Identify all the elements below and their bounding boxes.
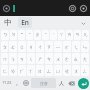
- staticText: 中: [4, 18, 12, 27]
- staticText: 注音: [40, 81, 48, 86]
- staticText: ㄢ: [75, 32, 80, 38]
- staticText: ˙: [53, 32, 54, 38]
- staticText: ㄤ: [82, 56, 88, 62]
- button[interactable]: ㄙ: [45, 65, 53, 76]
- staticText: ㄉ: [11, 32, 16, 38]
- button[interactable]: ㄡ: [72, 65, 80, 76]
- staticText: ˋ: [29, 32, 31, 38]
- button[interactable]: ㄛ: [63, 41, 71, 52]
- staticText: ㄇ: [2, 56, 8, 62]
- staticText: ㄌ: [10, 68, 16, 74]
- button[interactable]: Expand toolbar: [79, 19, 87, 27]
- button[interactable]: Backspace: [67, 77, 76, 89]
- button[interactable]: ˋ: [26, 30, 33, 40]
- staticText: ㄚ: [59, 32, 64, 38]
- button[interactable]: Settings: [68, 4, 77, 13]
- staticText: ㄠ: [73, 56, 79, 62]
- staticText: ㄨ: [55, 56, 61, 62]
- button[interactable]: ㄈ: [1, 65, 8, 76]
- button[interactable]: ㄦ: [82, 30, 89, 40]
- staticText: ˊ: [45, 32, 47, 38]
- button[interactable]: ㄏ: [18, 65, 26, 76]
- button[interactable]: ㄇ: [1, 53, 8, 64]
- staticText: ㄓ: [35, 32, 40, 38]
- staticText: ㄋ: [10, 56, 16, 62]
- button[interactable]: ㄤ: [81, 53, 89, 64]
- staticText: ㄟ: [73, 44, 79, 50]
- button[interactable]: ㄐ: [27, 41, 35, 52]
- button[interactable]: ㄌ: [9, 65, 17, 76]
- button[interactable]: ㄞ: [66, 30, 73, 40]
- button[interactable]: ㄓ: [34, 30, 41, 40]
- button[interactable]: ?123: [1, 77, 12, 89]
- button[interactable]: ，: [13, 77, 20, 89]
- staticText: ㄈ: [2, 68, 8, 74]
- button[interactable]: ㄣ: [81, 41, 89, 52]
- staticText: ㄊ: [10, 44, 16, 50]
- staticText: ㄡ: [73, 68, 79, 74]
- button[interactable]: ˙: [50, 30, 57, 40]
- button[interactable]: ㄒ: [27, 65, 35, 76]
- button[interactable]: ㄘ: [45, 53, 53, 64]
- staticText: ㄕ: [37, 56, 43, 62]
- staticText: ㄞ: [67, 32, 72, 38]
- button[interactable]: ㄍ: [18, 41, 26, 52]
- button[interactable]: ㄕ: [36, 53, 44, 64]
- staticText: ㄦ: [83, 32, 88, 38]
- staticText: ?123: [2, 80, 12, 86]
- staticText: ㄧ: [55, 44, 61, 50]
- button[interactable]: Emoji: [2, 4, 11, 13]
- staticText: ㄐ: [28, 44, 34, 50]
- staticText: ㄔ: [37, 44, 43, 50]
- button[interactable]: ㄆ: [1, 41, 8, 52]
- button[interactable]: More options: [79, 4, 88, 13]
- button[interactable]: ㄥ: [81, 65, 89, 76]
- button[interactable]: 中: [3, 17, 13, 28]
- button[interactable]: ˊ: [42, 30, 49, 40]
- staticText: ㄛ: [64, 44, 70, 50]
- staticText: ㄖ: [37, 68, 43, 74]
- button[interactable]: ㄚ: [58, 30, 65, 40]
- button[interactable]: En: [18, 17, 32, 28]
- button[interactable]: 人: [57, 77, 66, 89]
- staticText: 人: [59, 80, 64, 86]
- button[interactable]: Enter: [78, 78, 89, 89]
- button[interactable]: ㄟ: [72, 41, 80, 52]
- button[interactable]: ㄖ: [36, 65, 44, 76]
- button[interactable]: ㄎ: [18, 53, 26, 64]
- staticText: ㄑ: [28, 56, 34, 62]
- staticText: ㄣ: [82, 44, 88, 50]
- staticText: ˇ: [21, 32, 23, 38]
- staticText: ㄒ: [28, 68, 34, 74]
- button[interactable]: Space: [31, 78, 56, 88]
- button[interactable]: ㄗ: [45, 41, 53, 52]
- button[interactable]: ㄩ: [54, 65, 62, 76]
- staticText: ，: [14, 80, 20, 87]
- button[interactable]: ㄔ: [36, 41, 44, 52]
- staticText: ㄥ: [82, 68, 88, 74]
- button[interactable]: ㄅ: [1, 30, 9, 40]
- staticText: ㄍ: [19, 44, 25, 50]
- button[interactable]: ㄢ: [74, 30, 81, 40]
- staticText: ㄎ: [19, 56, 25, 62]
- button[interactable]: ㄋ: [9, 53, 17, 64]
- staticText: ㄙ: [46, 68, 52, 74]
- button[interactable]: ㄊ: [9, 41, 17, 52]
- button[interactable]: ㄨ: [54, 53, 62, 64]
- staticText: ㄝ: [64, 68, 70, 74]
- staticText: ㄆ: [2, 44, 8, 50]
- button[interactable]: ㄜ: [63, 53, 71, 64]
- button[interactable]: ㄑ: [27, 53, 35, 64]
- button[interactable]: ㄝ: [63, 65, 71, 76]
- staticText: ㄩ: [55, 68, 61, 74]
- staticText: ㄏ: [19, 68, 25, 74]
- staticText: ㄅ: [3, 32, 8, 38]
- button[interactable]: ㄠ: [72, 53, 80, 64]
- button[interactable]: ㄉ: [10, 30, 17, 40]
- staticText: ㄗ: [46, 44, 52, 50]
- staticText: ㄘ: [46, 56, 52, 62]
- button[interactable]: ㄧ: [54, 41, 62, 52]
- button[interactable]: ˇ: [18, 30, 25, 40]
- button[interactable]: Switch language: [21, 77, 30, 89]
- staticText: ㄜ: [64, 56, 70, 62]
